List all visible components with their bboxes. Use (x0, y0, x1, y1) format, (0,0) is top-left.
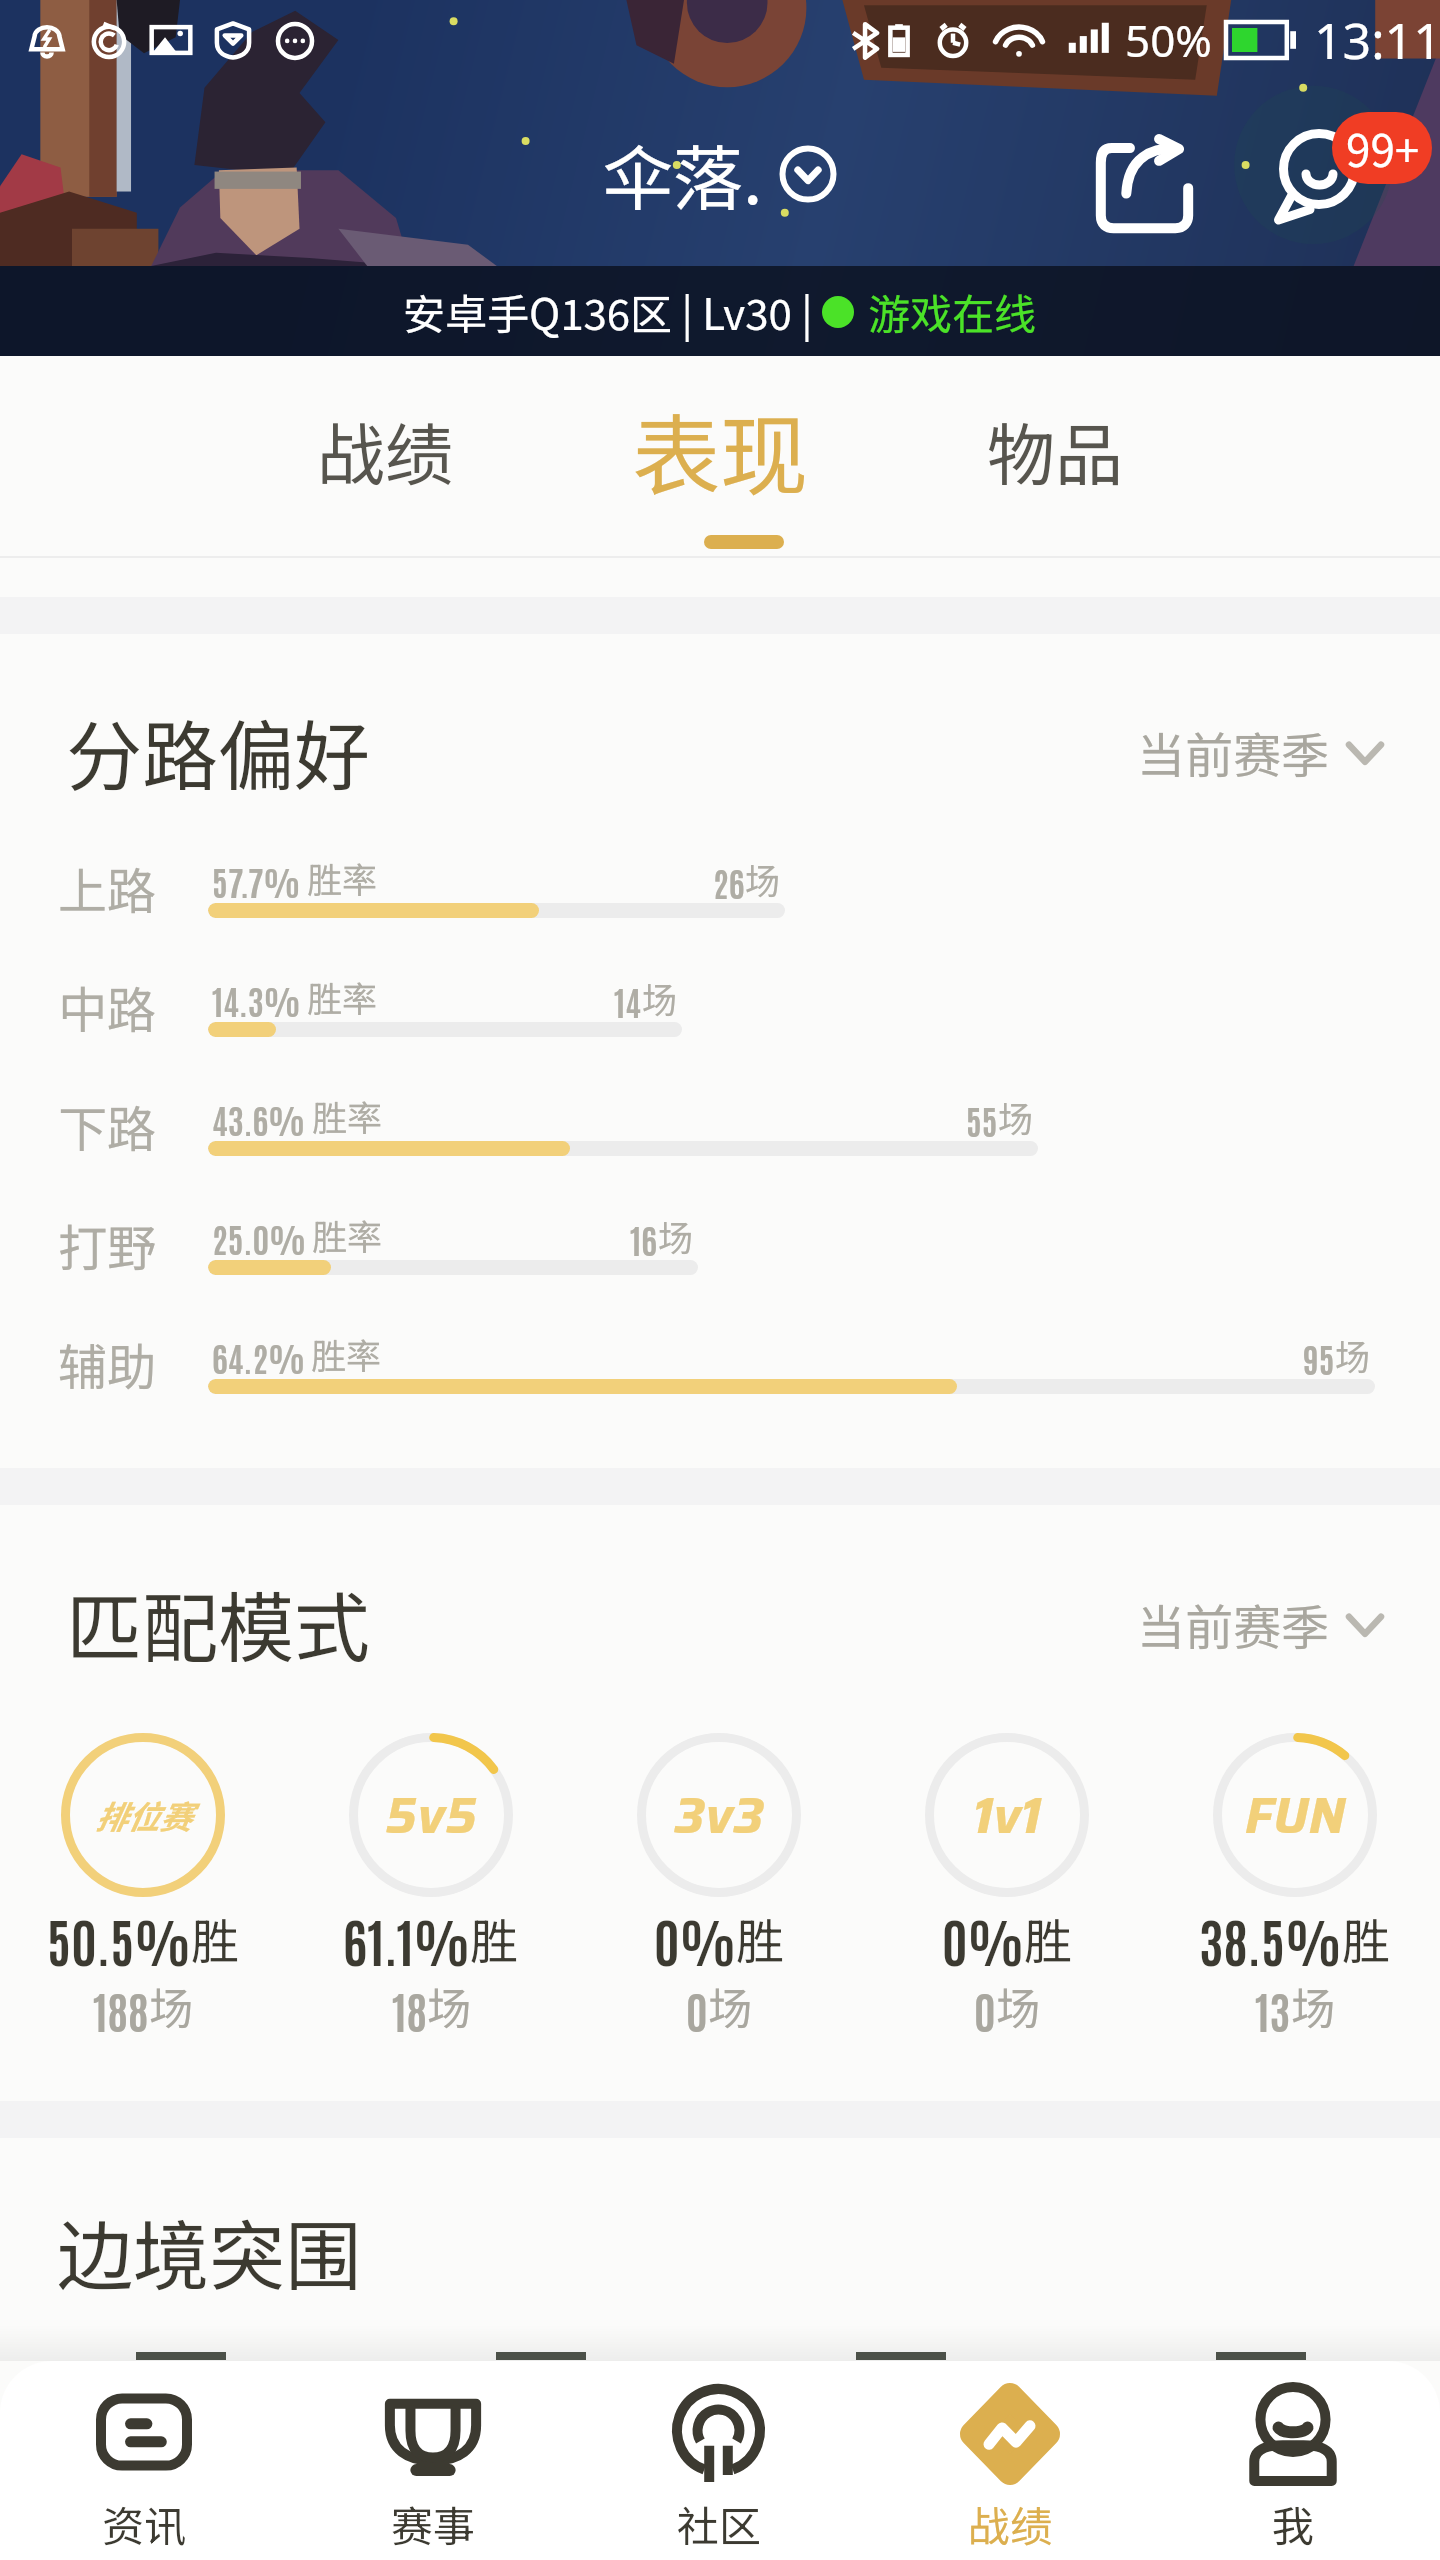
staticText: 38.5% (1199, 1906, 1342, 1973)
staticText: 胜 (736, 1903, 785, 1973)
staticText: 胜率 (311, 1328, 382, 1379)
staticText: 场 (1291, 1974, 1335, 2038)
staticText: 14 (614, 979, 642, 1023)
staticText: 14.3% (212, 978, 301, 1022)
button[interactable]: 伞落. (603, 123, 837, 224)
staticText: 胜 (1024, 1903, 1073, 1973)
staticText: 战绩 (968, 2493, 1053, 2554)
staticText: 边境突围 (57, 2196, 361, 2306)
staticText: 当前赛季 (1137, 717, 1330, 787)
staticText: 战绩 (317, 401, 454, 499)
button[interactable]: 赛事 (289, 2361, 577, 2560)
staticText: 55 (966, 1098, 998, 1142)
staticText: 61.1% (343, 1906, 470, 1973)
staticText: 43.6% (212, 1097, 306, 1141)
staticText: 下路 (58, 1090, 157, 1161)
staticText: 57.7% (212, 859, 301, 903)
button[interactable]: 战绩 (866, 2361, 1154, 2560)
staticText: 16 (630, 1217, 658, 1261)
staticText: 50% (1125, 10, 1212, 70)
staticText: 26 (713, 860, 745, 904)
staticText: 场 (1335, 1329, 1371, 1380)
staticText: 场 (708, 1974, 752, 2038)
staticText: 社区 (677, 2493, 762, 2554)
staticText: 1v1 (973, 1776, 1042, 1855)
staticText: 赛事 (391, 2493, 476, 2554)
staticText: 18 (392, 1981, 427, 2038)
staticText: 胜率 (307, 852, 378, 903)
staticText: 0% (654, 1906, 736, 1973)
button[interactable]: 排位赛 (0, 1733, 287, 2038)
staticText: 上路 (58, 852, 157, 923)
button[interactable]: 我 (1149, 2361, 1437, 2560)
button[interactable]: 分享 (1086, 126, 1203, 243)
button[interactable]: 消息 (1272, 125, 1372, 225)
staticText: 表现 (632, 386, 809, 513)
staticText: 场 (658, 1210, 694, 1261)
staticText: 场 (745, 853, 781, 904)
staticText: 分路偏好 (66, 696, 370, 806)
staticText: 场 (642, 972, 678, 1023)
staticText: 胜率 (312, 1209, 383, 1260)
staticText: 排位赛 (95, 1792, 192, 1838)
staticText: 25.0% (212, 1216, 306, 1260)
staticText: 188 (93, 1981, 149, 2038)
staticText: 胜 (1342, 1903, 1391, 1973)
button[interactable]: 当前赛季 (1117, 697, 1404, 807)
staticText: 场 (996, 1974, 1040, 2038)
staticText: 场 (998, 1091, 1034, 1142)
staticText: 胜 (470, 1903, 519, 1973)
staticText: 安卓手Q136区 | Lv30 | (403, 281, 822, 342)
staticText: 中路 (58, 971, 157, 1042)
button[interactable]: 战绩 (270, 356, 500, 558)
staticText: 64.2% (212, 1335, 305, 1379)
staticText: 游戏在线 (868, 281, 1037, 342)
staticText: 3v3 (674, 1776, 765, 1855)
staticText: 50.5% (47, 1906, 191, 1973)
staticText: 胜率 (312, 1090, 383, 1141)
button[interactable]: 表现 (605, 356, 835, 558)
button[interactable]: FUN (1151, 1733, 1439, 2038)
staticText: 匹配模式 (66, 1568, 370, 1678)
button[interactable]: 1v1 (863, 1733, 1151, 2038)
staticText: 0% (942, 1906, 1024, 1973)
button[interactable]: 物品 (940, 356, 1170, 558)
staticText: 当前赛季 (1137, 1589, 1330, 1659)
staticText: 资讯 (102, 2493, 187, 2554)
staticText: 打野 (58, 1209, 157, 1280)
staticText: 13 (1255, 1981, 1291, 2038)
button[interactable]: 5v5 (287, 1733, 575, 2038)
button[interactable]: 3v3 (575, 1733, 863, 2038)
staticText: 辅助 (58, 1328, 157, 1399)
staticText: 95 (1303, 1336, 1335, 1380)
staticText: 99+ (1346, 116, 1418, 180)
button[interactable]: 社区 (575, 2361, 863, 2560)
staticText: 0 (974, 1981, 996, 2038)
staticText: 伞落. (603, 123, 763, 224)
staticText: 场 (149, 1974, 193, 2038)
staticText: FUN (1245, 1776, 1346, 1855)
staticText: 5v5 (385, 1776, 477, 1855)
staticText: 我 (1272, 2493, 1315, 2554)
staticText: 0 (686, 1981, 708, 2038)
staticText: 13:11 (1314, 6, 1440, 74)
staticText: 物品 (987, 401, 1124, 499)
staticText: 胜 (191, 1903, 240, 1973)
staticText: 胜率 (307, 971, 378, 1022)
button[interactable]: 资讯 (0, 2361, 288, 2560)
staticText: 场 (427, 1974, 471, 2038)
button[interactable]: 当前赛季 (1117, 1569, 1404, 1679)
